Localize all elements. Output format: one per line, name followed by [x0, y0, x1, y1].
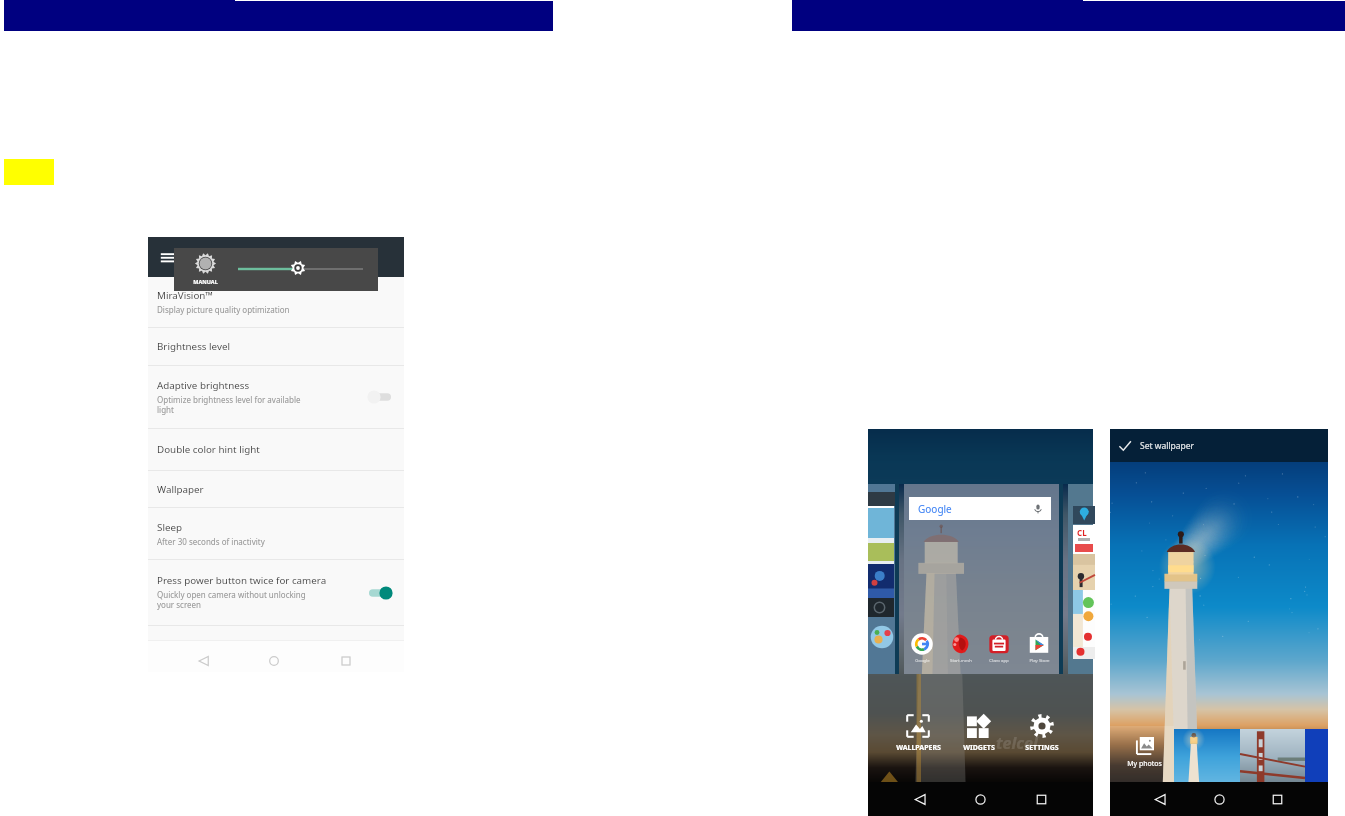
button[interactable]: Recent apps — [1269, 791, 1286, 808]
staticText: MANUAL — [186, 278, 225, 285]
button[interactable]: Confirm — [1110, 429, 1328, 462]
staticText: Press power button twice for camera — [157, 574, 327, 587]
button[interactable]: Home — [266, 653, 282, 669]
staticText: Adaptive brightness — [157, 379, 250, 392]
staticText: Start.mesh — [950, 657, 972, 663]
button[interactable]: Back — [196, 653, 212, 669]
staticText: MiraVision™ — [157, 289, 213, 302]
button[interactable]: MiraVision™ — [148, 277, 404, 327]
button[interactable]: Google — [909, 497, 1051, 520]
button[interactable]: Home — [1211, 791, 1228, 808]
staticText: Google — [915, 657, 930, 663]
button[interactable]: Adaptive brightness — [148, 366, 404, 428]
staticText: CL — [1077, 527, 1087, 538]
staticText: Google — [918, 502, 952, 516]
staticText: Set wallpaper — [1140, 440, 1195, 452]
button[interactable]: WALLPAPERS — [890, 714, 946, 753]
staticText: Double color hint light — [157, 443, 260, 456]
button[interactable]: Lighthouse wallpaper — [1174, 729, 1240, 786]
button[interactable]: SETTINGS — [1014, 714, 1070, 753]
button[interactable]: Back — [912, 791, 929, 808]
button[interactable]: Double color hint light — [148, 429, 404, 470]
staticText: Play Store — [1029, 657, 1050, 663]
staticText: After 30 seconds of inactivity — [157, 536, 265, 547]
staticText: telcel — [996, 732, 1038, 754]
staticText: SETTINGS — [1025, 743, 1059, 753]
button[interactable]: Blue wallpaper — [1305, 729, 1328, 786]
button[interactable]: Play Store — [1022, 633, 1056, 663]
staticText: Wallpaper — [157, 483, 204, 496]
button[interactable]: My photos — [1120, 737, 1168, 769]
button[interactable]: WIDGETS — [951, 714, 1007, 753]
button[interactable]: Claro app — [982, 633, 1016, 663]
button[interactable]: Wallpaper — [148, 471, 404, 507]
other: Confirm — [1118, 439, 1132, 453]
button[interactable]: Press power button twice for camera — [148, 560, 404, 625]
staticText: WALLPAPERS — [896, 743, 941, 753]
staticText: Quickly open camera without unlocking yo… — [157, 589, 306, 611]
button[interactable]: Brightness level — [148, 328, 404, 365]
button[interactable]: Recent apps — [338, 653, 354, 669]
button[interactable]: Google — [905, 633, 939, 663]
staticText: Sleep — [157, 521, 182, 534]
staticText: Brightness level — [157, 340, 230, 353]
button[interactable]: Home — [972, 791, 989, 808]
button[interactable]: Start.mesh — [944, 633, 978, 663]
staticText: My photos — [1127, 759, 1162, 769]
other: Voice search — [1033, 504, 1043, 514]
button[interactable]: Sleep — [148, 508, 404, 559]
staticText: Display picture quality optimization — [157, 304, 290, 315]
staticText: WIDGETS — [963, 743, 995, 753]
button[interactable]: Menu — [159, 248, 177, 266]
staticText: Claro app — [989, 657, 1009, 663]
button[interactable]: Golden Gate wallpaper — [1240, 729, 1305, 786]
button[interactable]: Back — [1152, 791, 1169, 808]
button[interactable]: Recent apps — [1033, 791, 1050, 808]
staticText: Optimize brightness level for available … — [157, 394, 301, 416]
